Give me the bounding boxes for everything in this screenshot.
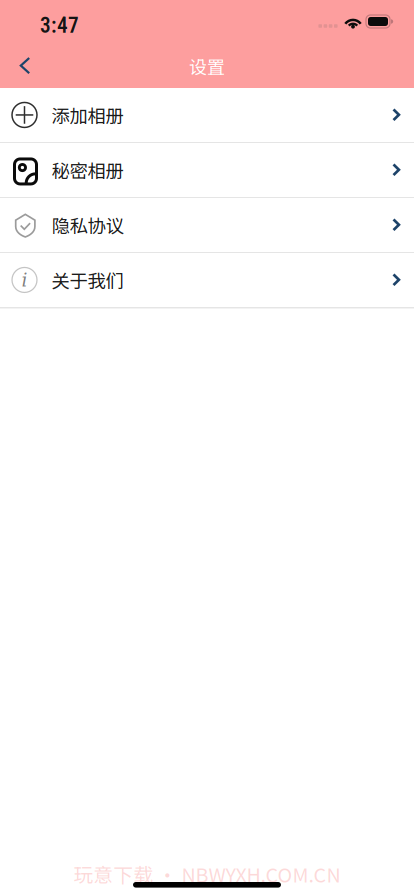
staticText: 隐私协议 <box>51 212 123 238</box>
staticText: i <box>21 269 27 291</box>
button[interactable]: 添加相册 <box>0 88 414 143</box>
button[interactable]: i <box>0 253 414 308</box>
staticText: 秘密相册 <box>51 157 123 183</box>
button[interactable]: 隐私协议 <box>0 198 414 253</box>
button[interactable]: 秘密相册 <box>0 143 414 198</box>
staticText: 玩意下载 · NBWYXH.COM.CN <box>73 860 340 888</box>
staticText: 设置 <box>189 53 225 79</box>
staticText: 添加相册 <box>51 102 123 128</box>
staticText: 3:47 <box>40 13 79 38</box>
button[interactable]: 返回 <box>0 44 54 88</box>
staticText: 关于我们 <box>51 267 123 293</box>
